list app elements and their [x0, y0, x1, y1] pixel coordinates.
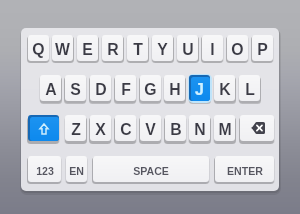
staticText: J	[195, 81, 204, 99]
staticText: ENTER	[227, 165, 263, 177]
button[interactable]: R	[102, 35, 123, 61]
button[interactable]: G	[140, 75, 161, 101]
button[interactable]: A	[40, 75, 61, 101]
button[interactable]: EN	[66, 156, 87, 182]
staticText: Z	[71, 121, 81, 139]
staticText: E	[82, 41, 93, 59]
button[interactable]: H	[164, 75, 185, 101]
button[interactable]: M	[214, 115, 235, 141]
staticText: C	[120, 121, 132, 139]
button[interactable]: Y	[152, 35, 173, 61]
staticText: B	[170, 121, 182, 139]
staticText: T	[133, 41, 143, 59]
staticText: K	[219, 81, 231, 99]
staticText: Y	[157, 41, 168, 59]
staticText: P	[257, 41, 268, 59]
button[interactable]: Backspace	[240, 115, 274, 141]
staticText: 123	[36, 165, 54, 177]
button[interactable]: Z	[65, 115, 86, 141]
staticText: Q	[32, 41, 45, 59]
button[interactable]: 123	[28, 156, 61, 182]
button[interactable]: B	[165, 115, 186, 141]
button[interactable]: Q	[28, 35, 49, 61]
button[interactable]: L	[239, 75, 260, 101]
button[interactable]: Shift	[28, 115, 59, 141]
button[interactable]: N	[189, 115, 210, 141]
button[interactable]: K	[214, 75, 235, 101]
staticText: L	[245, 81, 255, 99]
button[interactable]: D	[90, 75, 111, 101]
staticText: X	[95, 121, 106, 139]
button[interactable]: C	[115, 115, 136, 141]
button[interactable]: E	[77, 35, 98, 61]
button[interactable]: J	[189, 75, 210, 101]
staticText: F	[121, 81, 131, 99]
button[interactable]: F	[115, 75, 136, 101]
button[interactable]: SPACE	[93, 156, 209, 182]
button[interactable]: S	[65, 75, 86, 101]
staticText: V	[145, 121, 156, 139]
staticText: EN	[69, 165, 84, 177]
button[interactable]: O	[227, 35, 248, 61]
staticText: H	[169, 81, 181, 99]
staticText: SPACE	[133, 165, 169, 177]
button[interactable]: ENTER	[215, 156, 274, 182]
staticText: W	[55, 41, 70, 59]
button[interactable]: W	[52, 35, 73, 61]
staticText: U	[182, 41, 194, 59]
staticText: O	[231, 41, 244, 59]
staticText: S	[70, 81, 81, 99]
button[interactable]: P	[252, 35, 273, 61]
staticText: N	[194, 121, 206, 139]
button[interactable]: I	[202, 35, 223, 61]
staticText: D	[95, 81, 107, 99]
staticText: I	[210, 41, 215, 59]
button[interactable]: V	[140, 115, 161, 141]
button[interactable]: X	[90, 115, 111, 141]
staticText: A	[45, 81, 57, 99]
staticText: R	[107, 41, 119, 59]
staticText: G	[144, 81, 157, 99]
button[interactable]: U	[177, 35, 198, 61]
button[interactable]: T	[127, 35, 148, 61]
staticText: M	[218, 121, 232, 139]
